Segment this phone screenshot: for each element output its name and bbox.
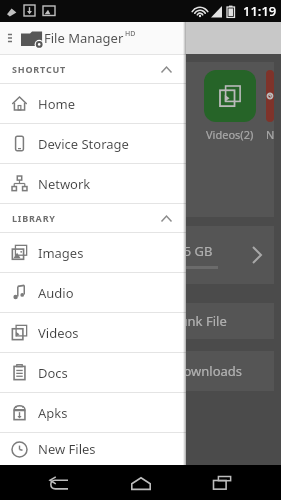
staticText: Videos(2) (206, 127, 254, 142)
staticText: Audio (38, 284, 74, 302)
button[interactable]: SHORTCUT (0, 55, 186, 83)
button[interactable] (204, 70, 256, 122)
button[interactable]: Home (0, 84, 186, 123)
staticText: Home (38, 95, 75, 113)
staticText: Videos (38, 324, 79, 342)
button[interactable]: Back (37, 468, 81, 498)
staticText: Images (38, 244, 84, 262)
button[interactable] (266, 70, 274, 122)
button[interactable]: Images (0, 233, 186, 272)
staticText: Device Storage (38, 135, 129, 153)
staticText: Docs (38, 364, 68, 382)
button[interactable]: Recent apps (200, 468, 244, 498)
button[interactable]: Apks (0, 393, 186, 432)
staticText: 11:19 (243, 2, 277, 20)
staticText: HD (125, 29, 136, 39)
staticText: Downloads (174, 362, 243, 380)
staticText: Network (38, 175, 91, 193)
staticText: New Files(13) (266, 127, 274, 142)
button[interactable]: New Files (0, 433, 186, 465)
button[interactable]: Audio (0, 273, 186, 312)
button[interactable]: Open navigation menu (0, 22, 14, 54)
button[interactable]: Network (0, 164, 186, 203)
staticText: Apks (38, 404, 68, 422)
button[interactable]: LIBRARY (0, 204, 186, 232)
staticText: LIBRARY (12, 212, 56, 224)
button[interactable]: Docs (0, 353, 186, 392)
button[interactable]: Home (119, 468, 163, 498)
staticText: File Manager (44, 29, 124, 47)
button[interactable]: Device Storage (0, 124, 186, 163)
staticText: SHORTCUT (12, 63, 67, 75)
button[interactable]: Videos (0, 313, 186, 352)
staticText: Junk File (176, 312, 227, 330)
staticText: 12.55 GB (158, 242, 213, 260)
staticText: New Files (38, 440, 96, 458)
